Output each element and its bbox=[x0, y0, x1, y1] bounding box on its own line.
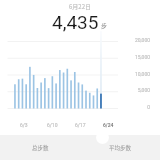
staticText: 0 bbox=[126, 104, 150, 110]
staticText: 平均步数 bbox=[109, 144, 132, 152]
staticText: 5,000 bbox=[126, 87, 150, 93]
staticText: 6/10 bbox=[47, 122, 58, 128]
staticText: 10,000 bbox=[126, 71, 150, 77]
staticText: 4,435 bbox=[52, 11, 99, 33]
button[interactable]: Selected day handle bbox=[96, 131, 109, 144]
staticText: 6/3 bbox=[20, 122, 28, 128]
staticText: 总步数 bbox=[32, 144, 49, 152]
button[interactable]: 平均步数 bbox=[80, 135, 160, 160]
staticText: 15,000 bbox=[126, 54, 150, 60]
staticText: 20,000 bbox=[126, 37, 150, 43]
staticText: 6/17 bbox=[75, 122, 86, 128]
staticText: 6/24 bbox=[103, 122, 114, 128]
staticText: 6月22日 bbox=[69, 2, 91, 11]
button[interactable]: 总步数 bbox=[0, 135, 80, 160]
staticText: 步 bbox=[101, 21, 108, 30]
